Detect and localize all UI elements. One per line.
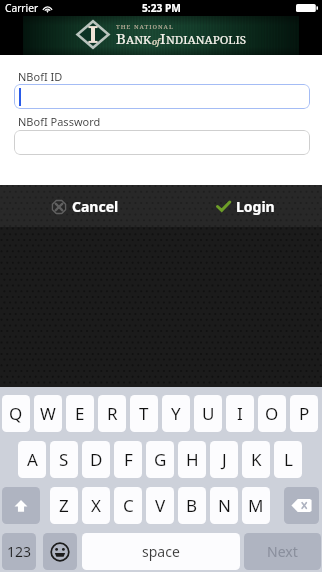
staticText: R: [107, 402, 118, 425]
staticText: X: [91, 494, 101, 517]
button[interactable]: X: [82, 487, 110, 524]
button[interactable]: M: [242, 487, 270, 524]
button[interactable]: U: [194, 395, 222, 432]
staticText: Q: [9, 402, 23, 425]
button[interactable]: Shift: [2, 487, 40, 524]
staticText: Z: [59, 494, 69, 517]
staticText: I: [160, 28, 166, 48]
button[interactable]: [14, 130, 310, 155]
button[interactable]: [14, 84, 310, 109]
staticText: A: [27, 448, 38, 471]
staticText: THE NATIONAL: [116, 23, 174, 31]
staticText: D: [90, 448, 103, 471]
staticText: J: [222, 448, 227, 471]
button[interactable]: T: [130, 395, 158, 432]
button[interactable]: F: [114, 441, 142, 478]
button[interactable]: L: [274, 441, 302, 478]
staticText: NDIANAPOLIS: [166, 32, 247, 48]
staticText: 5:23 PM: [142, 1, 181, 15]
button[interactable]: K: [242, 441, 270, 478]
button[interactable]: D: [82, 441, 110, 478]
staticText: V: [155, 494, 166, 517]
staticText: K: [251, 448, 262, 471]
button[interactable]: B: [178, 487, 206, 524]
button[interactable]: H: [178, 441, 206, 478]
staticText: F: [124, 448, 133, 471]
button[interactable]: Next: [244, 533, 321, 570]
button[interactable]: P: [290, 395, 318, 432]
staticText: Cancel: [72, 197, 119, 216]
button[interactable]: C: [114, 487, 142, 524]
button[interactable]: V: [146, 487, 174, 524]
button[interactable]: Emoji: [43, 533, 77, 570]
button[interactable]: O: [258, 395, 286, 432]
button[interactable]: W: [34, 395, 62, 432]
button[interactable]: R: [98, 395, 126, 432]
button[interactable]: S: [50, 441, 78, 478]
button[interactable]: Q: [2, 395, 30, 432]
staticText: S: [59, 448, 69, 471]
staticText: N: [218, 494, 231, 517]
staticText: Y: [171, 402, 181, 425]
staticText: L: [284, 448, 293, 471]
staticText: NBofI Password: [18, 114, 101, 129]
staticText: Login: [236, 197, 275, 216]
staticText: ANK: [126, 32, 152, 48]
button[interactable]: Cancel: [51, 197, 119, 216]
staticText: W: [40, 402, 56, 425]
button[interactable]: J: [210, 441, 238, 478]
button[interactable]: N: [210, 487, 238, 524]
staticText: H: [186, 448, 199, 471]
button[interactable]: Z: [50, 487, 78, 524]
staticText: Carrier: [5, 1, 39, 15]
staticText: 123: [7, 542, 32, 561]
staticText: M: [248, 494, 264, 517]
staticText: B: [186, 494, 198, 517]
button[interactable]: Login: [216, 197, 275, 216]
button[interactable]: Backspace: [284, 487, 319, 524]
staticText: NBofI ID: [18, 69, 63, 84]
staticText: E: [75, 402, 85, 425]
staticText: G: [154, 448, 167, 471]
button[interactable]: A: [18, 441, 46, 478]
staticText: space: [142, 542, 180, 561]
staticText: of: [152, 36, 160, 48]
staticText: U: [202, 402, 215, 425]
staticText: B: [116, 28, 126, 48]
button[interactable]: 123: [2, 533, 36, 570]
staticText: P: [299, 402, 310, 425]
staticText: I: [237, 402, 243, 425]
staticText: Next: [267, 542, 298, 561]
button[interactable]: I: [226, 395, 254, 432]
button[interactable]: Y: [162, 395, 190, 432]
button[interactable]: E: [66, 395, 94, 432]
staticText: T: [139, 402, 149, 425]
staticText: O: [265, 402, 279, 425]
staticText: C: [123, 494, 134, 517]
button[interactable]: G: [146, 441, 174, 478]
button[interactable]: space: [82, 533, 240, 570]
